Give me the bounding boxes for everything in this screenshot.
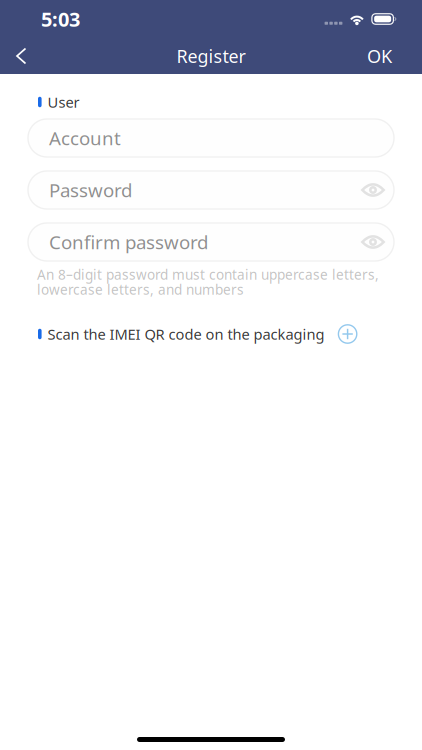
staticText: Password xyxy=(49,178,132,202)
staticText: Register xyxy=(176,44,245,68)
staticText: 5:03 xyxy=(41,5,80,33)
staticText: An 8–digit password must contain upperca… xyxy=(37,265,379,284)
button[interactable]: Back xyxy=(0,38,40,73)
staticText: User xyxy=(48,92,80,112)
staticText: lowercase letters, and numbers xyxy=(37,280,244,299)
button[interactable]: OK xyxy=(351,35,422,77)
staticText: OK xyxy=(367,44,392,68)
staticText: Confirm password xyxy=(49,230,208,254)
button[interactable]: Add xyxy=(325,324,358,344)
button[interactable]: Show password xyxy=(353,235,385,249)
staticText: Account xyxy=(49,126,121,150)
staticText: Scan the IMEI QR code on the packaging xyxy=(48,324,325,344)
button[interactable]: Show password xyxy=(353,183,385,197)
